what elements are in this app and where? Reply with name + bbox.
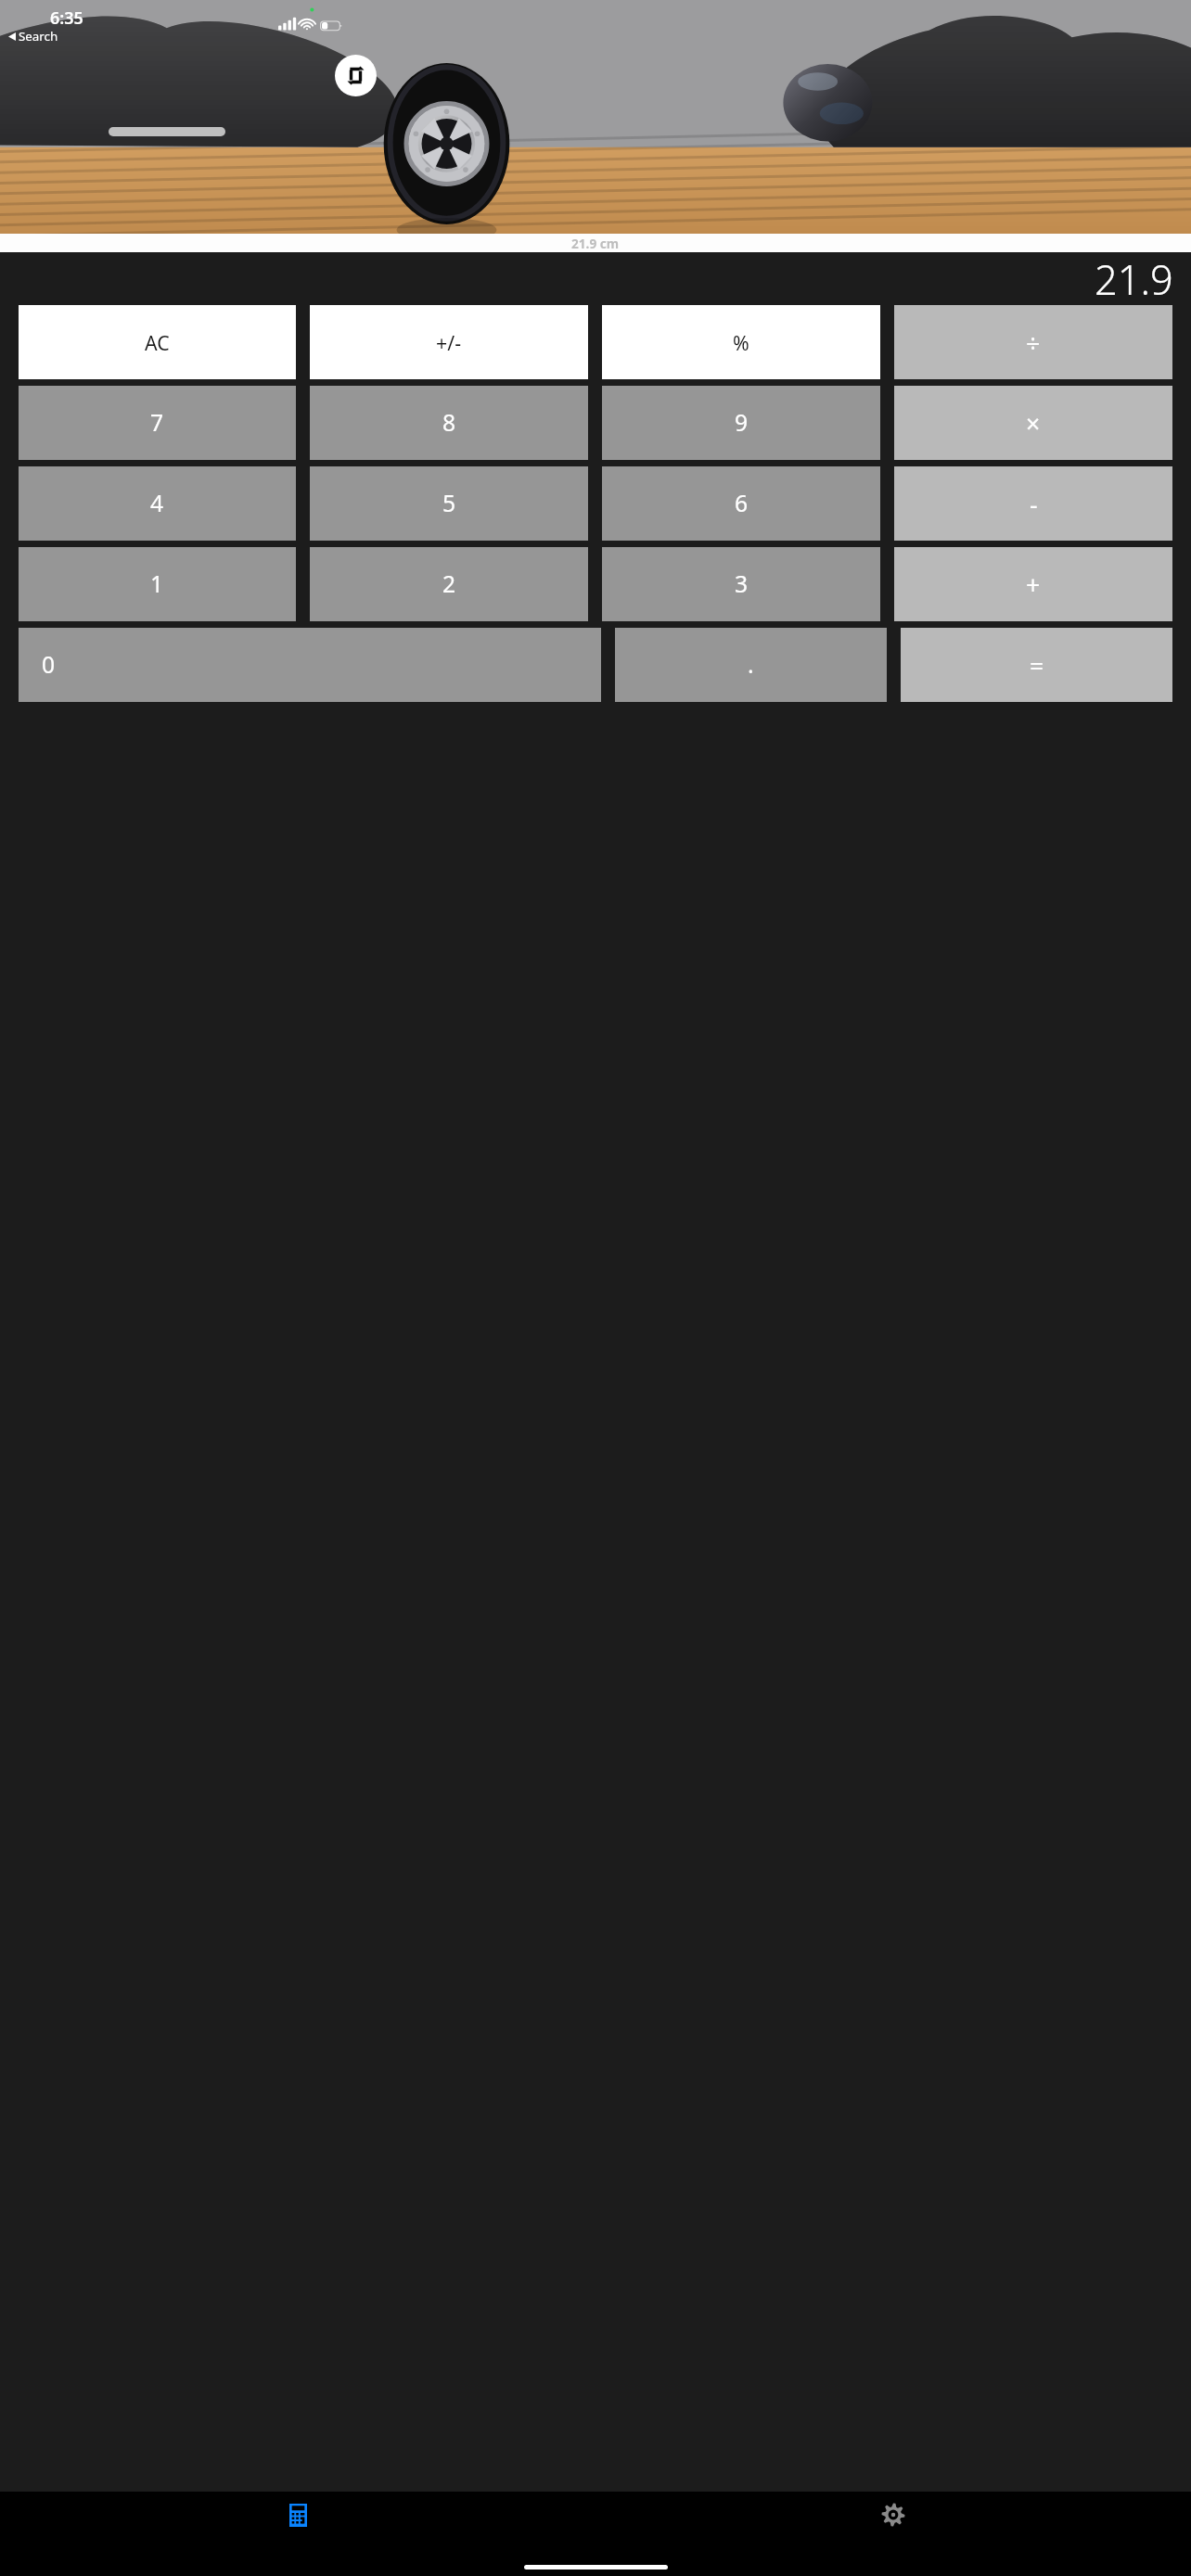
staticText: 0 [42, 649, 56, 681]
button[interactable]: 1 [19, 547, 296, 621]
button[interactable]: Search [6, 27, 60, 45]
staticText: + [1026, 567, 1041, 601]
staticText: 8 [442, 407, 456, 439]
button[interactable]: 0 [19, 628, 601, 702]
button[interactable]: + [894, 547, 1172, 621]
staticText: 3 [735, 568, 749, 600]
button[interactable]: +/- [310, 305, 588, 379]
button[interactable]: Settings [595, 2492, 1191, 2538]
staticText: +/- [436, 329, 462, 356]
button[interactable]: 7 [19, 386, 296, 460]
button[interactable]: Calculator [0, 2492, 595, 2538]
staticText: 5 [442, 488, 456, 519]
staticText: × [1026, 406, 1041, 440]
button[interactable]: 8 [310, 386, 588, 460]
staticText: % [733, 329, 749, 356]
button[interactable]: = [901, 628, 1172, 702]
staticText: 4 [150, 488, 164, 519]
staticText: Search [19, 28, 58, 45]
staticText: 7 [150, 407, 164, 439]
staticText: 6 [735, 488, 749, 519]
button[interactable]: 6 [602, 466, 880, 541]
staticText: 1 [150, 568, 164, 600]
button[interactable]: - [894, 466, 1172, 541]
button[interactable]: % [602, 305, 880, 379]
staticText: - [1030, 487, 1038, 520]
staticText: 21.9 cm [571, 235, 620, 252]
button[interactable]: 4 [19, 466, 296, 541]
staticText: AC [145, 329, 170, 356]
button[interactable]: 9 [602, 386, 880, 460]
button[interactable]: 5 [310, 466, 588, 541]
staticText: 6:35 [50, 6, 83, 30]
staticText: . [748, 649, 754, 681]
staticText: 9 [735, 407, 749, 439]
staticText: 21.9 [1095, 252, 1173, 305]
button[interactable]: × [894, 386, 1172, 460]
staticText: ÷ [1026, 325, 1041, 359]
button[interactable]: 2 [310, 547, 588, 621]
staticText: 2 [442, 568, 456, 600]
button[interactable]: 3 [602, 547, 880, 621]
button[interactable]: AC [19, 305, 296, 379]
button[interactable]: ÷ [894, 305, 1172, 379]
staticText: = [1030, 648, 1044, 682]
button[interactable]: Swap units [335, 55, 377, 96]
